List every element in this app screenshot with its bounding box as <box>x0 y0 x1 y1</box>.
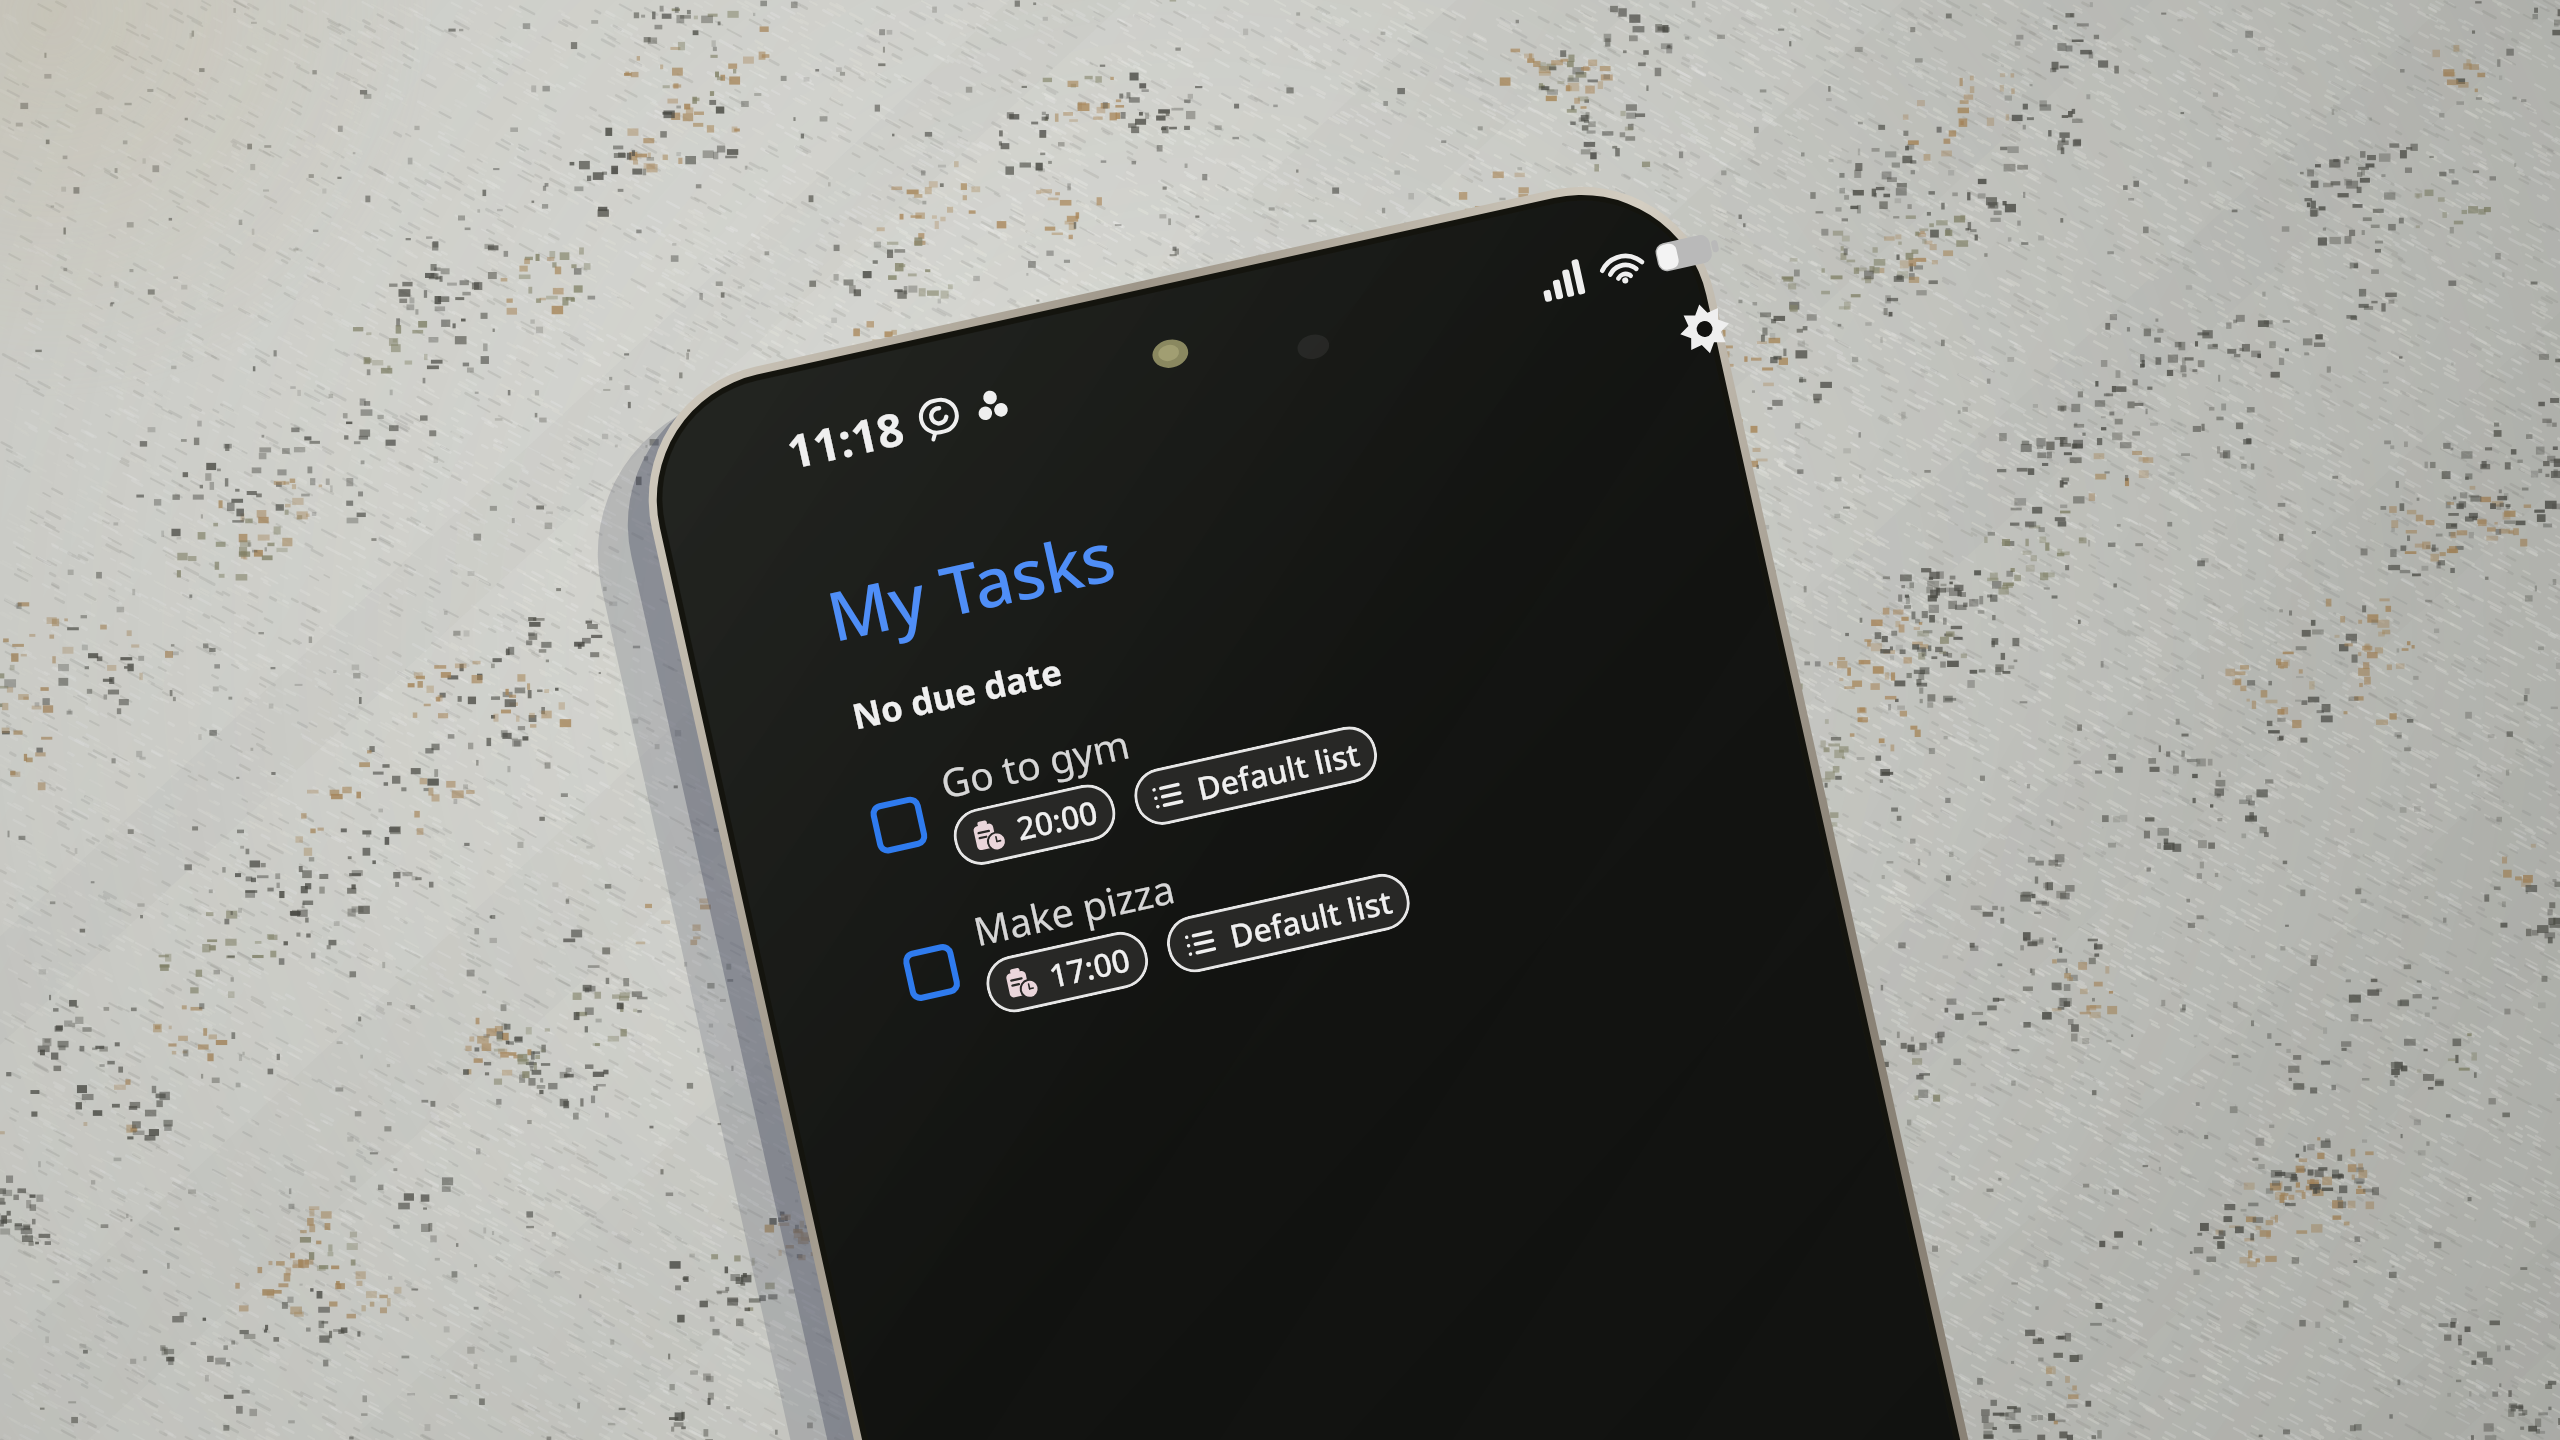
button[interactable]: Default list <box>1162 868 1415 978</box>
staticText: Default list <box>1226 879 1396 957</box>
staticText: Go to gym <box>936 716 1135 810</box>
staticText: My Tasks <box>818 508 1123 661</box>
staticText: 17:00 <box>1045 937 1134 997</box>
button[interactable]: Settings <box>1657 282 1750 375</box>
staticText: Make pizza <box>968 861 1179 957</box>
staticText: No due date <box>848 647 1067 740</box>
button[interactable]: Default list <box>1129 721 1382 830</box>
button[interactable]: 20:00 <box>948 779 1121 870</box>
button[interactable]: Complete Go to gym <box>807 553 1868 902</box>
button[interactable]: 17:00 <box>981 926 1153 1018</box>
staticText: Default list <box>1193 732 1363 809</box>
staticText: 11:18 <box>781 396 910 482</box>
button[interactable]: Complete Make pizza <box>899 940 964 1005</box>
button[interactable]: Complete Make pizza <box>840 700 1901 1050</box>
staticText: 20:00 <box>1012 790 1102 850</box>
button[interactable]: Complete Go to gym <box>866 792 932 858</box>
